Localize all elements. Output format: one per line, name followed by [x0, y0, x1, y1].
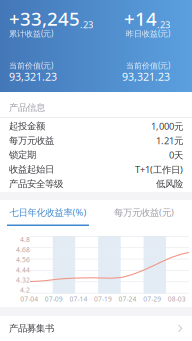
button[interactable]: 七日年化收益率(%) — [0, 200, 96, 226]
staticText: 累计收益(元) — [9, 28, 53, 39]
staticText: 七日年化收益率(%) — [9, 206, 86, 218]
staticText: 4.56 — [16, 255, 30, 264]
staticText: 1,000元 — [151, 120, 183, 132]
staticText: 产品募集书 — [9, 323, 54, 334]
staticText: 07-04 — [20, 295, 38, 303]
staticText: 08-03 — [168, 295, 186, 303]
staticText: 07-09 — [45, 295, 63, 303]
staticText: 当前价值(元) — [126, 60, 170, 71]
staticText: 07-14 — [69, 295, 87, 303]
staticText: 每万元收益 — [9, 135, 54, 146]
staticText: 07-29 — [143, 295, 161, 303]
staticText: 每万元收益(元) — [114, 206, 174, 218]
staticText: .23 — [157, 18, 170, 31]
staticText: +14 — [124, 6, 157, 31]
staticText: 4.8 — [20, 235, 30, 244]
staticText: 4.44 — [16, 265, 30, 274]
staticText: 收益起始日 — [9, 164, 54, 175]
staticText: 低风险 — [156, 178, 183, 190]
staticText: 4.32 — [16, 275, 30, 284]
staticText: 93,321.23 — [122, 69, 170, 84]
staticText: 07-19 — [94, 295, 112, 303]
staticText: 07-24 — [119, 295, 137, 303]
staticText: 昨日收益(元) — [126, 28, 170, 39]
staticText: 产品安全等级 — [9, 178, 63, 190]
staticText: 当前价值(元) — [9, 60, 53, 71]
staticText: 4.2 — [20, 286, 30, 294]
staticText: T+1(工作日) — [135, 163, 183, 176]
staticText: 93,321.23 — [9, 69, 57, 84]
staticText: 起投金额 — [9, 120, 45, 132]
staticText: 4.68 — [16, 245, 30, 254]
staticText: 1.21元 — [156, 134, 183, 147]
staticText: 0天 — [169, 149, 183, 161]
staticText: 产品信息 — [9, 102, 45, 113]
button[interactable]: 每万元收益(元) — [96, 200, 192, 226]
button[interactable]: 产品募集书 — [0, 316, 192, 341]
staticText: +33,245 — [9, 6, 80, 31]
staticText: .23 — [80, 18, 93, 31]
staticText: 锁定期 — [9, 149, 36, 161]
